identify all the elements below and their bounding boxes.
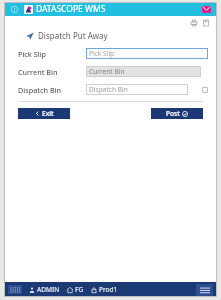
button[interactable]: Prod1 bbox=[91, 285, 118, 294]
button[interactable]: Keyboard bbox=[8, 285, 22, 294]
button[interactable]: Info bbox=[9, 4, 20, 15]
staticText: Current Bin bbox=[18, 67, 58, 77]
button[interactable]: Dispatch Bin bbox=[86, 84, 188, 95]
staticText: Prod1 bbox=[99, 285, 118, 294]
button[interactable]: Save bbox=[202, 19, 210, 27]
staticText: Current Bin bbox=[89, 67, 125, 76]
staticText: Exit bbox=[42, 109, 54, 118]
staticText: Pick Slip bbox=[89, 49, 115, 58]
staticText: ADMIN bbox=[37, 285, 60, 294]
button[interactable]: Menu bbox=[196, 284, 213, 296]
staticText: Pick Slip bbox=[18, 49, 47, 59]
staticText: Dispatch Bin bbox=[18, 85, 62, 95]
button[interactable]: Toggle dispatch bin bbox=[202, 87, 208, 93]
button[interactable]: Pick Slip bbox=[86, 48, 208, 59]
staticText: DATASCOPE WMS bbox=[36, 3, 106, 15]
button[interactable]: Current Bin bbox=[86, 66, 201, 77]
button[interactable]: FG bbox=[67, 285, 84, 294]
staticText: Dispatch Bin bbox=[89, 85, 128, 94]
staticText: FG bbox=[75, 285, 84, 294]
staticText: Dispatch Put Away bbox=[38, 30, 108, 41]
button[interactable]: ADMIN bbox=[29, 285, 60, 294]
button[interactable]: Exit bbox=[18, 108, 70, 119]
button[interactable]: Print bbox=[190, 19, 198, 27]
button[interactable]: Post bbox=[151, 108, 203, 119]
button[interactable]: Messages bbox=[202, 5, 211, 14]
staticText: Post bbox=[166, 109, 180, 118]
